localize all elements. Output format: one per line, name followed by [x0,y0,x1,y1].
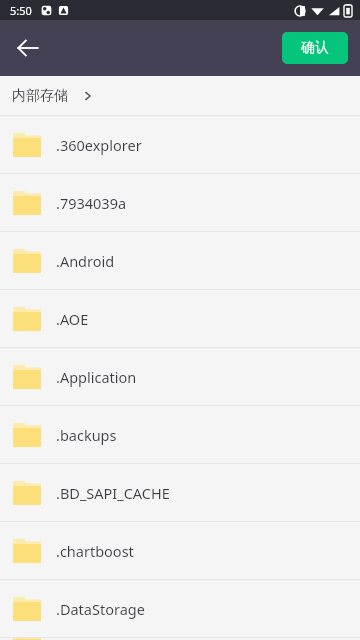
staticText: .Android [56,251,115,271]
staticText: 内部存储 [12,87,68,105]
button[interactable]: .360explorer [0,116,360,174]
button[interactable]: .Android [0,232,360,290]
button[interactable]: .AOE [0,290,360,348]
staticText: .BD_SAPI_CACHE [56,483,170,503]
button[interactable]: Back [4,24,52,72]
button[interactable]: .BD_SAPI_CACHE [0,464,360,522]
staticText: .AOE [56,309,89,329]
staticText: 5:50 [10,3,32,18]
staticText: 确认 [301,39,329,57]
staticText: .360explorer [56,135,142,155]
button[interactable]: .Application [0,348,360,406]
staticText: .backups [56,425,117,445]
staticText: .chartboost [56,541,134,561]
button[interactable]: .DataStorage [0,580,360,638]
button[interactable]: .chartboost [0,522,360,580]
button[interactable]: 内部存储 [12,87,94,105]
staticText: .Application [56,367,137,387]
button[interactable]: .backups [0,406,360,464]
staticText: .DataStorage [56,599,145,619]
staticText: .7934039a [56,193,127,213]
button[interactable]: .Downloads [0,638,360,640]
button[interactable]: 确认 [282,32,348,64]
button[interactable]: .7934039a [0,174,360,232]
